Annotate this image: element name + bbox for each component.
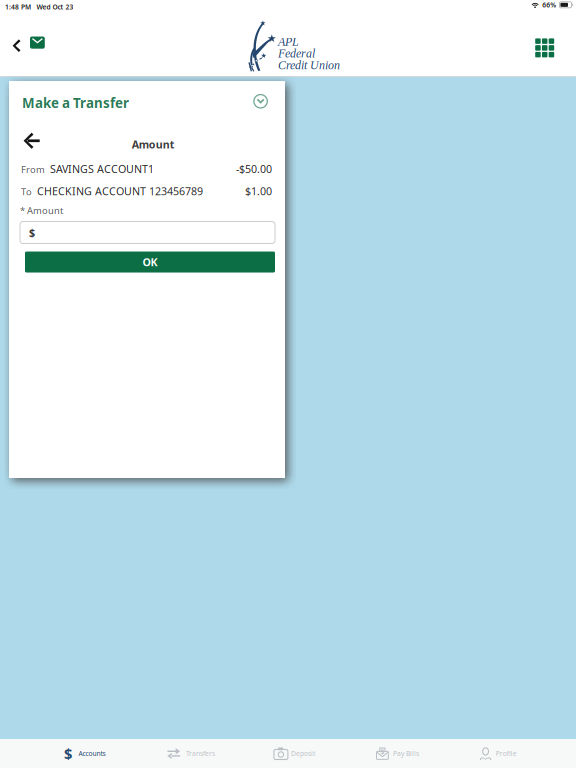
staticText: $1.00 [245, 184, 272, 198]
button[interactable]: $ [62, 739, 111, 768]
button[interactable]: Collapse section [254, 95, 267, 108]
button[interactable]: Messages [24, 28, 51, 57]
staticText: OK [142, 255, 157, 269]
button[interactable]: Profile [479, 739, 523, 768]
button[interactable]: Deposit [274, 739, 321, 768]
button[interactable]: Transfers [167, 739, 221, 768]
staticText: Accounts [78, 749, 105, 758]
button[interactable]: $ [376, 739, 425, 768]
staticText: Amount [132, 137, 175, 151]
staticText: From [21, 163, 45, 176]
staticText: Pay Bills [393, 749, 419, 758]
staticText: Make a Transfer [22, 94, 129, 112]
staticText: Credit Union [278, 59, 340, 72]
button[interactable]: Back [24, 133, 40, 149]
staticText: SAVINGS ACCOUNT1 [50, 162, 154, 176]
staticText: To [21, 185, 32, 198]
button[interactable]: OK [9, 243, 285, 272]
staticText: -$50.00 [236, 162, 272, 176]
button[interactable]: More [528, 31, 561, 64]
button[interactable]: Back [6, 31, 28, 60]
staticText: CHECKING ACCOUNT 123456789 [37, 184, 203, 198]
staticText: Transfers [186, 749, 215, 758]
staticText: 66% [542, 0, 556, 9]
staticText: Profile [496, 749, 517, 758]
staticText: $ [64, 744, 72, 763]
staticText: 1:48 PM [5, 3, 31, 11]
staticText: Federal [278, 47, 315, 60]
staticText: $ [380, 747, 384, 756]
staticText: * Amount [20, 204, 63, 216]
staticText: APL [278, 35, 299, 48]
staticText: $ [29, 225, 35, 240]
staticText: Wed Oct 23 [36, 3, 73, 11]
staticText: Deposit [291, 749, 315, 758]
